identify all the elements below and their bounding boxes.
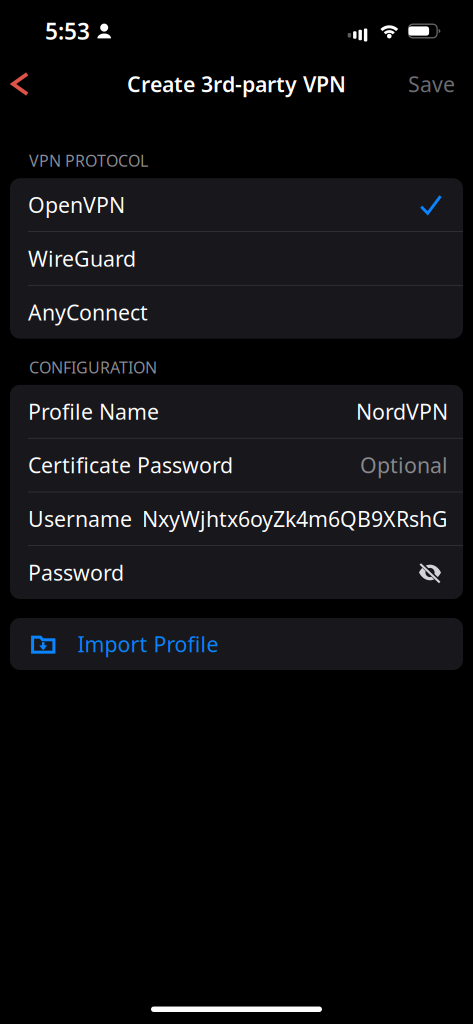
button[interactable]: Import Profile xyxy=(0,618,473,670)
staticText: NxyWjhtx6oyZk4m6QB9XRshG xyxy=(142,505,448,533)
staticText: Password xyxy=(28,558,124,587)
staticText: Certificate Password xyxy=(28,451,233,479)
staticText: Username xyxy=(28,505,132,533)
staticText: 5:53 xyxy=(45,16,90,46)
button[interactable]: Username xyxy=(10,492,463,545)
button[interactable]: Password xyxy=(10,546,463,599)
button[interactable]: Save xyxy=(392,58,473,110)
staticText: VPN PROTOCOL xyxy=(29,150,148,171)
button[interactable]: Back xyxy=(0,59,45,109)
staticText: AnyConnect xyxy=(28,298,148,326)
staticText: Create 3rd-party VPN xyxy=(127,70,346,98)
staticText: WireGuard xyxy=(28,244,136,273)
staticText: CONFIGURATION xyxy=(29,357,157,378)
staticText: Profile Name xyxy=(28,397,159,425)
staticText: Optional xyxy=(360,451,448,479)
button[interactable]: OpenVPN xyxy=(10,178,463,231)
staticText: NordVPN xyxy=(356,397,448,425)
staticText: OpenVPN xyxy=(28,191,125,219)
staticText: Save xyxy=(408,70,455,98)
staticText: Import Profile xyxy=(77,630,218,658)
button[interactable]: WireGuard xyxy=(10,232,463,285)
button[interactable]: Profile Name xyxy=(10,385,463,438)
button[interactable]: Certificate Password xyxy=(10,439,463,492)
button[interactable]: AnyConnect xyxy=(10,286,463,339)
